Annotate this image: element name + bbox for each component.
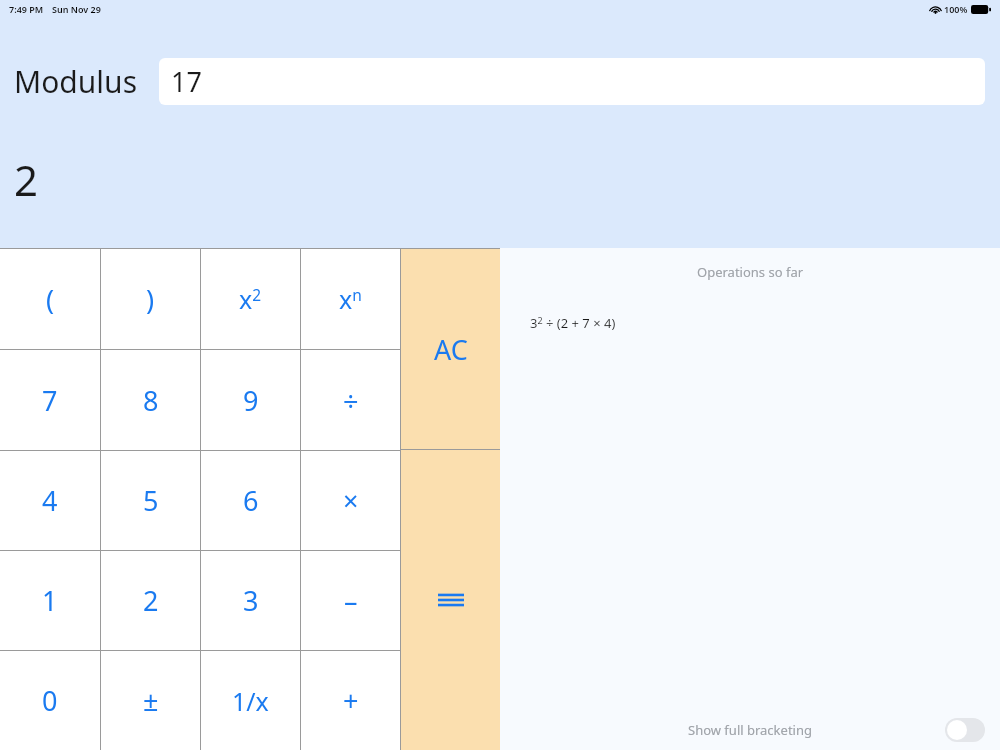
button[interactable]: Show full bracketing toggle [945, 718, 985, 742]
staticText: Operations so far [697, 263, 804, 281]
staticText: AC [434, 331, 468, 368]
button[interactable]: 7 [0, 350, 100, 450]
staticText: 4 [42, 482, 58, 519]
button[interactable]: 2 [101, 551, 200, 650]
staticText: 3 [243, 582, 259, 619]
staticText: 100% [944, 3, 968, 15]
button[interactable]: + [301, 651, 400, 750]
button[interactable]: ± [101, 651, 200, 750]
staticText: 1 [42, 582, 58, 619]
button[interactable]: 5 [101, 451, 200, 550]
button[interactable]: 0 [0, 651, 100, 750]
staticText: 1/x [232, 684, 269, 718]
staticText: ( [46, 281, 55, 318]
button[interactable]: x2 [201, 249, 300, 349]
staticText: 0 [42, 682, 58, 719]
staticText: – [344, 582, 358, 619]
other: Equals [438, 591, 464, 609]
staticText: 2 [143, 582, 159, 619]
staticText: ÷ [343, 382, 359, 419]
button[interactable]: 1/x [201, 651, 300, 750]
button[interactable]: – [301, 551, 400, 650]
button[interactable]: ( [0, 249, 100, 349]
staticText: xn [339, 282, 362, 316]
button[interactable]: 6 [201, 451, 300, 550]
staticText: 6 [243, 482, 259, 519]
staticText: Sun Nov 29 [52, 3, 101, 15]
button[interactable]: xn [301, 249, 400, 349]
staticText: Show full bracketing [688, 721, 812, 739]
button[interactable]: ÷ [301, 350, 400, 450]
staticText: Modulus [14, 61, 137, 102]
button[interactable]: × [301, 451, 400, 550]
staticText: x2 [239, 282, 262, 316]
staticText: 7 [42, 382, 58, 419]
staticText: 32 ÷ (2 + 7 × 4) [530, 314, 616, 332]
button[interactable]: 3 [201, 551, 300, 650]
staticText: × [343, 482, 359, 519]
button[interactable]: Equals [401, 450, 500, 750]
staticText: ± [143, 682, 159, 719]
staticText: 7:49 PM [9, 3, 44, 15]
button[interactable]: 8 [101, 350, 200, 450]
staticText: + [343, 682, 359, 719]
button[interactable]: AC [401, 249, 500, 449]
staticText: 8 [143, 382, 159, 419]
button[interactable]: ) [101, 249, 200, 349]
button[interactable]: 4 [0, 451, 100, 550]
button[interactable]: 1 [0, 551, 100, 650]
staticText: 9 [243, 382, 259, 419]
button[interactable]: 9 [201, 350, 300, 450]
staticText: ) [146, 281, 155, 318]
staticText: 2 [14, 151, 39, 208]
button[interactable]: 17 [159, 58, 985, 105]
staticText: 17 [171, 63, 202, 100]
staticText: 5 [143, 482, 159, 519]
